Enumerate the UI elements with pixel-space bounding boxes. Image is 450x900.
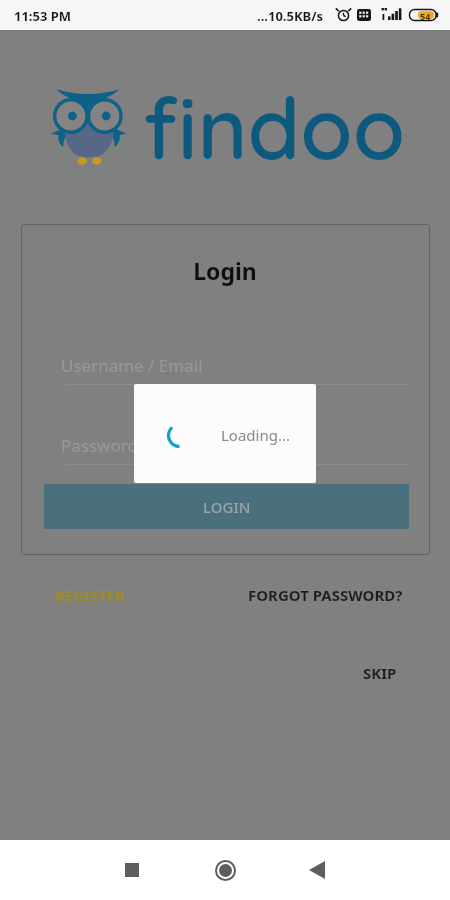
button[interactable]: SKIP xyxy=(363,663,397,683)
button[interactable]: LOGIN xyxy=(44,484,409,529)
staticText: Password xyxy=(61,434,138,457)
staticText: findoo xyxy=(143,74,406,180)
button[interactable]: REGISTER xyxy=(55,585,126,605)
staticText: ...10.5KB/s xyxy=(257,7,324,25)
staticText: 11:53 PM xyxy=(14,7,72,25)
button[interactable]: Home xyxy=(203,848,247,892)
button[interactable]: FORGOT PASSWORD? xyxy=(248,585,403,605)
button[interactable]: Back xyxy=(295,848,339,892)
staticText: Username / Email xyxy=(61,354,203,377)
button[interactable]: Recent apps xyxy=(110,848,154,892)
staticText: Loading... xyxy=(221,425,291,445)
staticText: Login xyxy=(0,255,450,286)
staticText: LOGIN xyxy=(203,497,251,517)
staticText: 54 xyxy=(420,10,431,22)
